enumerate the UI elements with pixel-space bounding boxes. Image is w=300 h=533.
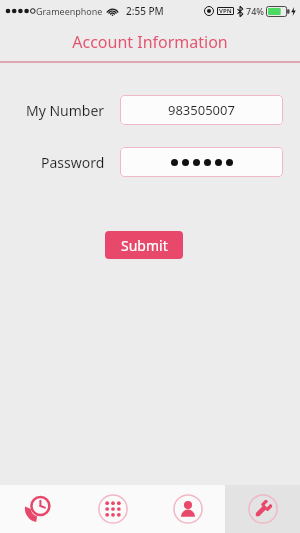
staticText: Account Information xyxy=(72,31,228,53)
staticText: Submit xyxy=(121,236,168,255)
button[interactable]: Settings xyxy=(225,485,300,533)
button[interactable]: Call history xyxy=(0,485,75,533)
button[interactable]: Submit xyxy=(105,231,183,259)
staticText: Password xyxy=(41,153,105,172)
button[interactable] xyxy=(120,147,283,177)
staticText: 74% xyxy=(246,5,264,17)
staticText: VPN xyxy=(219,7,232,15)
staticText: My Number xyxy=(26,101,105,120)
button[interactable]: 983505007 xyxy=(120,95,283,125)
button[interactable]: Dial pad xyxy=(75,485,150,533)
staticText: Grameenphone xyxy=(36,5,103,17)
staticText: 2:55 PM xyxy=(126,4,164,18)
button[interactable]: Contacts xyxy=(150,485,225,533)
staticText: 983505007 xyxy=(168,101,235,119)
